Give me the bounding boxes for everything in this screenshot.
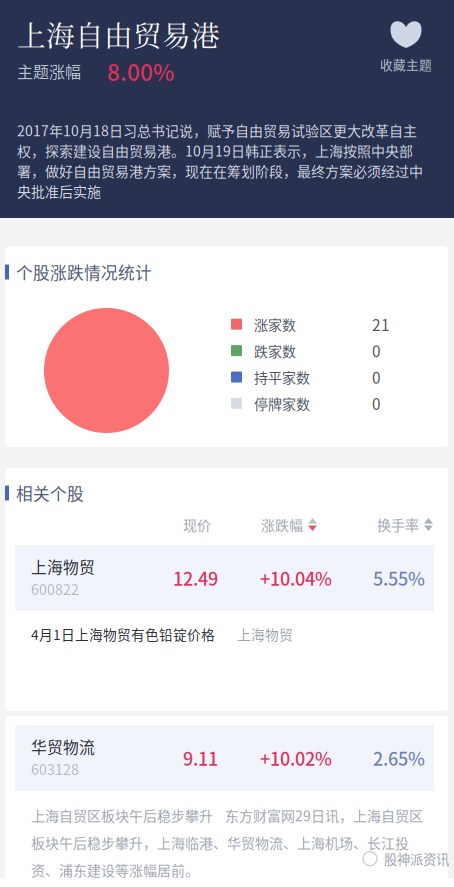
- staticText: 600822: [31, 579, 79, 599]
- staticText: 持平家数: [254, 367, 310, 387]
- staticText: 上海物贸: [31, 555, 95, 578]
- staticText: 21: [372, 313, 390, 335]
- button[interactable]: 上海物贸: [15, 545, 434, 611]
- button[interactable]: 4月1日上海物贸有色铅锭价格: [5, 611, 448, 657]
- staticText: 股神派资讯: [384, 849, 449, 868]
- staticText: 主题涨幅: [17, 59, 81, 83]
- button[interactable]: 华贸物流: [15, 725, 434, 791]
- staticText: 2.65%: [373, 745, 425, 771]
- staticText: 涨跌幅: [261, 514, 303, 535]
- staticText: 跌家数: [254, 340, 296, 361]
- staticText: 停牌家数: [254, 393, 310, 414]
- staticText: 收藏主题: [380, 55, 432, 73]
- staticText: 0: [372, 392, 381, 414]
- staticText: 9.11: [183, 745, 218, 771]
- staticText: +10.04%: [260, 565, 332, 591]
- staticText: 4月1日上海物贸有色铅锭价格: [31, 624, 215, 644]
- button[interactable]: 换手率: [317, 514, 433, 535]
- staticText: 5.55%: [373, 565, 425, 591]
- staticText: 华贸物流: [31, 735, 95, 758]
- staticText: 现价: [183, 514, 211, 535]
- staticText: 相关个股: [16, 481, 84, 505]
- staticText: 0: [372, 366, 381, 388]
- staticText: 603128: [31, 759, 79, 779]
- staticText: 上海物贸: [237, 624, 293, 644]
- staticText: 换手率: [377, 514, 419, 535]
- staticText: 上海自贸区板块午后稳步攀升 东方财富网29日讯，上海自贸区板块午后稳步攀升，上海…: [31, 805, 423, 880]
- staticText: 2017年10月18日习总书记说，赋予自由贸易试验区更大改革自主权，探索建设自由…: [17, 120, 423, 201]
- staticText: 上海自由贸易港: [17, 13, 220, 55]
- staticText: +10.02%: [260, 745, 332, 771]
- staticText: 0: [372, 339, 381, 362]
- button[interactable]: 收藏主题: [380, 16, 454, 73]
- staticText: 个股涨跌情况统计: [16, 260, 152, 284]
- staticText: 12.49: [173, 565, 218, 591]
- staticText: 涨家数: [254, 314, 296, 334]
- staticText: 8.00%: [107, 55, 174, 87]
- button[interactable]: 涨跌幅: [211, 514, 317, 535]
